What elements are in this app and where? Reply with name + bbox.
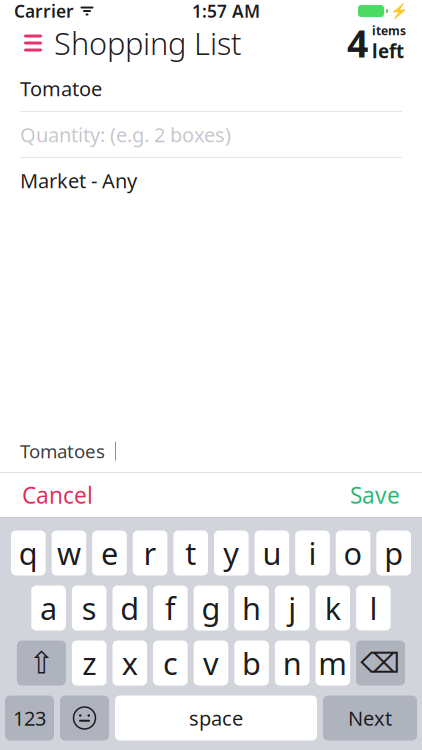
staticText: c [163,643,178,683]
staticText: i [308,533,316,573]
staticText: k [325,588,341,628]
staticText: ⚡ [390,3,408,19]
button[interactable]: r [133,530,167,575]
button[interactable]: q [11,530,46,575]
staticText: h [242,588,261,628]
staticText: u [262,533,281,573]
staticText: Tomatoe [20,75,102,102]
staticText: a [40,588,57,628]
button[interactable]: s [72,585,106,630]
staticText: ⇧ [28,646,54,680]
button[interactable]: Delete [356,640,405,685]
button[interactable]: Next [323,695,417,740]
staticText: 123 [13,705,46,731]
staticText: Market - Any [20,167,137,194]
staticText: q [19,533,38,573]
staticText: w [57,533,81,573]
staticText: e [101,533,118,573]
staticText: d [120,588,139,628]
button[interactable]: m [315,640,350,685]
staticText: n [283,643,302,683]
button[interactable]: Market - Any [0,158,422,203]
staticText: items [372,23,406,38]
button[interactable]: u [255,530,289,575]
staticText: left [372,39,404,63]
staticText: y [223,533,239,573]
staticText: p [384,533,403,573]
button[interactable]: Shift [17,640,66,685]
button[interactable]: n [275,640,309,685]
staticText: f [165,588,176,628]
staticText: m [318,643,347,683]
button[interactable]: Quantity: (e.g. 2 boxes) [0,112,422,157]
staticText: l [369,588,377,628]
staticText: g [201,588,220,628]
button[interactable]: p [376,530,411,575]
staticText: o [344,533,363,573]
staticText: Quantity: (e.g. 2 boxes) [20,121,231,148]
staticText: Shopping List [54,23,241,63]
button[interactable]: g [194,585,228,630]
staticText: Save [350,480,400,510]
staticText: v [203,643,219,683]
staticText: Tomatoes [20,439,105,463]
staticText: 4 [347,18,368,68]
staticText: r [144,533,157,573]
button[interactable]: c [153,640,188,685]
button[interactable]: j [275,585,309,630]
button[interactable]: x [112,640,147,685]
button[interactable]: t [173,530,208,575]
button[interactable]: Tomatoes [0,430,136,472]
staticText: z [82,643,96,683]
staticText: 1:57 AM [192,0,260,22]
button[interactable]: o [336,530,370,575]
staticText: Next [348,705,392,731]
button[interactable]: Emoji [60,695,109,740]
button[interactable]: k [315,585,350,630]
staticText: Carrier [14,0,74,22]
button[interactable]: d [112,585,147,630]
button[interactable]: l [356,585,391,630]
staticText: b [242,643,261,683]
staticText: ⌫ [361,647,401,679]
button[interactable]: Save [328,473,422,517]
button[interactable]: h [234,585,269,630]
button[interactable]: v [194,640,228,685]
button[interactable]: b [234,640,269,685]
staticText: Cancel [22,480,93,510]
button[interactable]: Tomatoe [0,66,422,111]
staticText: s [82,588,97,628]
button[interactable]: a [31,585,66,630]
staticText: t [185,533,196,573]
button[interactable]: f [153,585,188,630]
button[interactable]: Menu [16,23,50,63]
button[interactable]: z [72,640,106,685]
button[interactable]: Cancel [0,473,115,517]
button[interactable]: space [115,695,317,740]
staticText: space [189,705,243,731]
staticText: j [288,588,296,628]
button[interactable]: 123 [5,695,54,740]
staticText: x [122,643,138,683]
button[interactable]: y [214,530,249,575]
button[interactable]: e [92,530,127,575]
button[interactable]: w [52,530,86,575]
button[interactable]: i [295,530,330,575]
